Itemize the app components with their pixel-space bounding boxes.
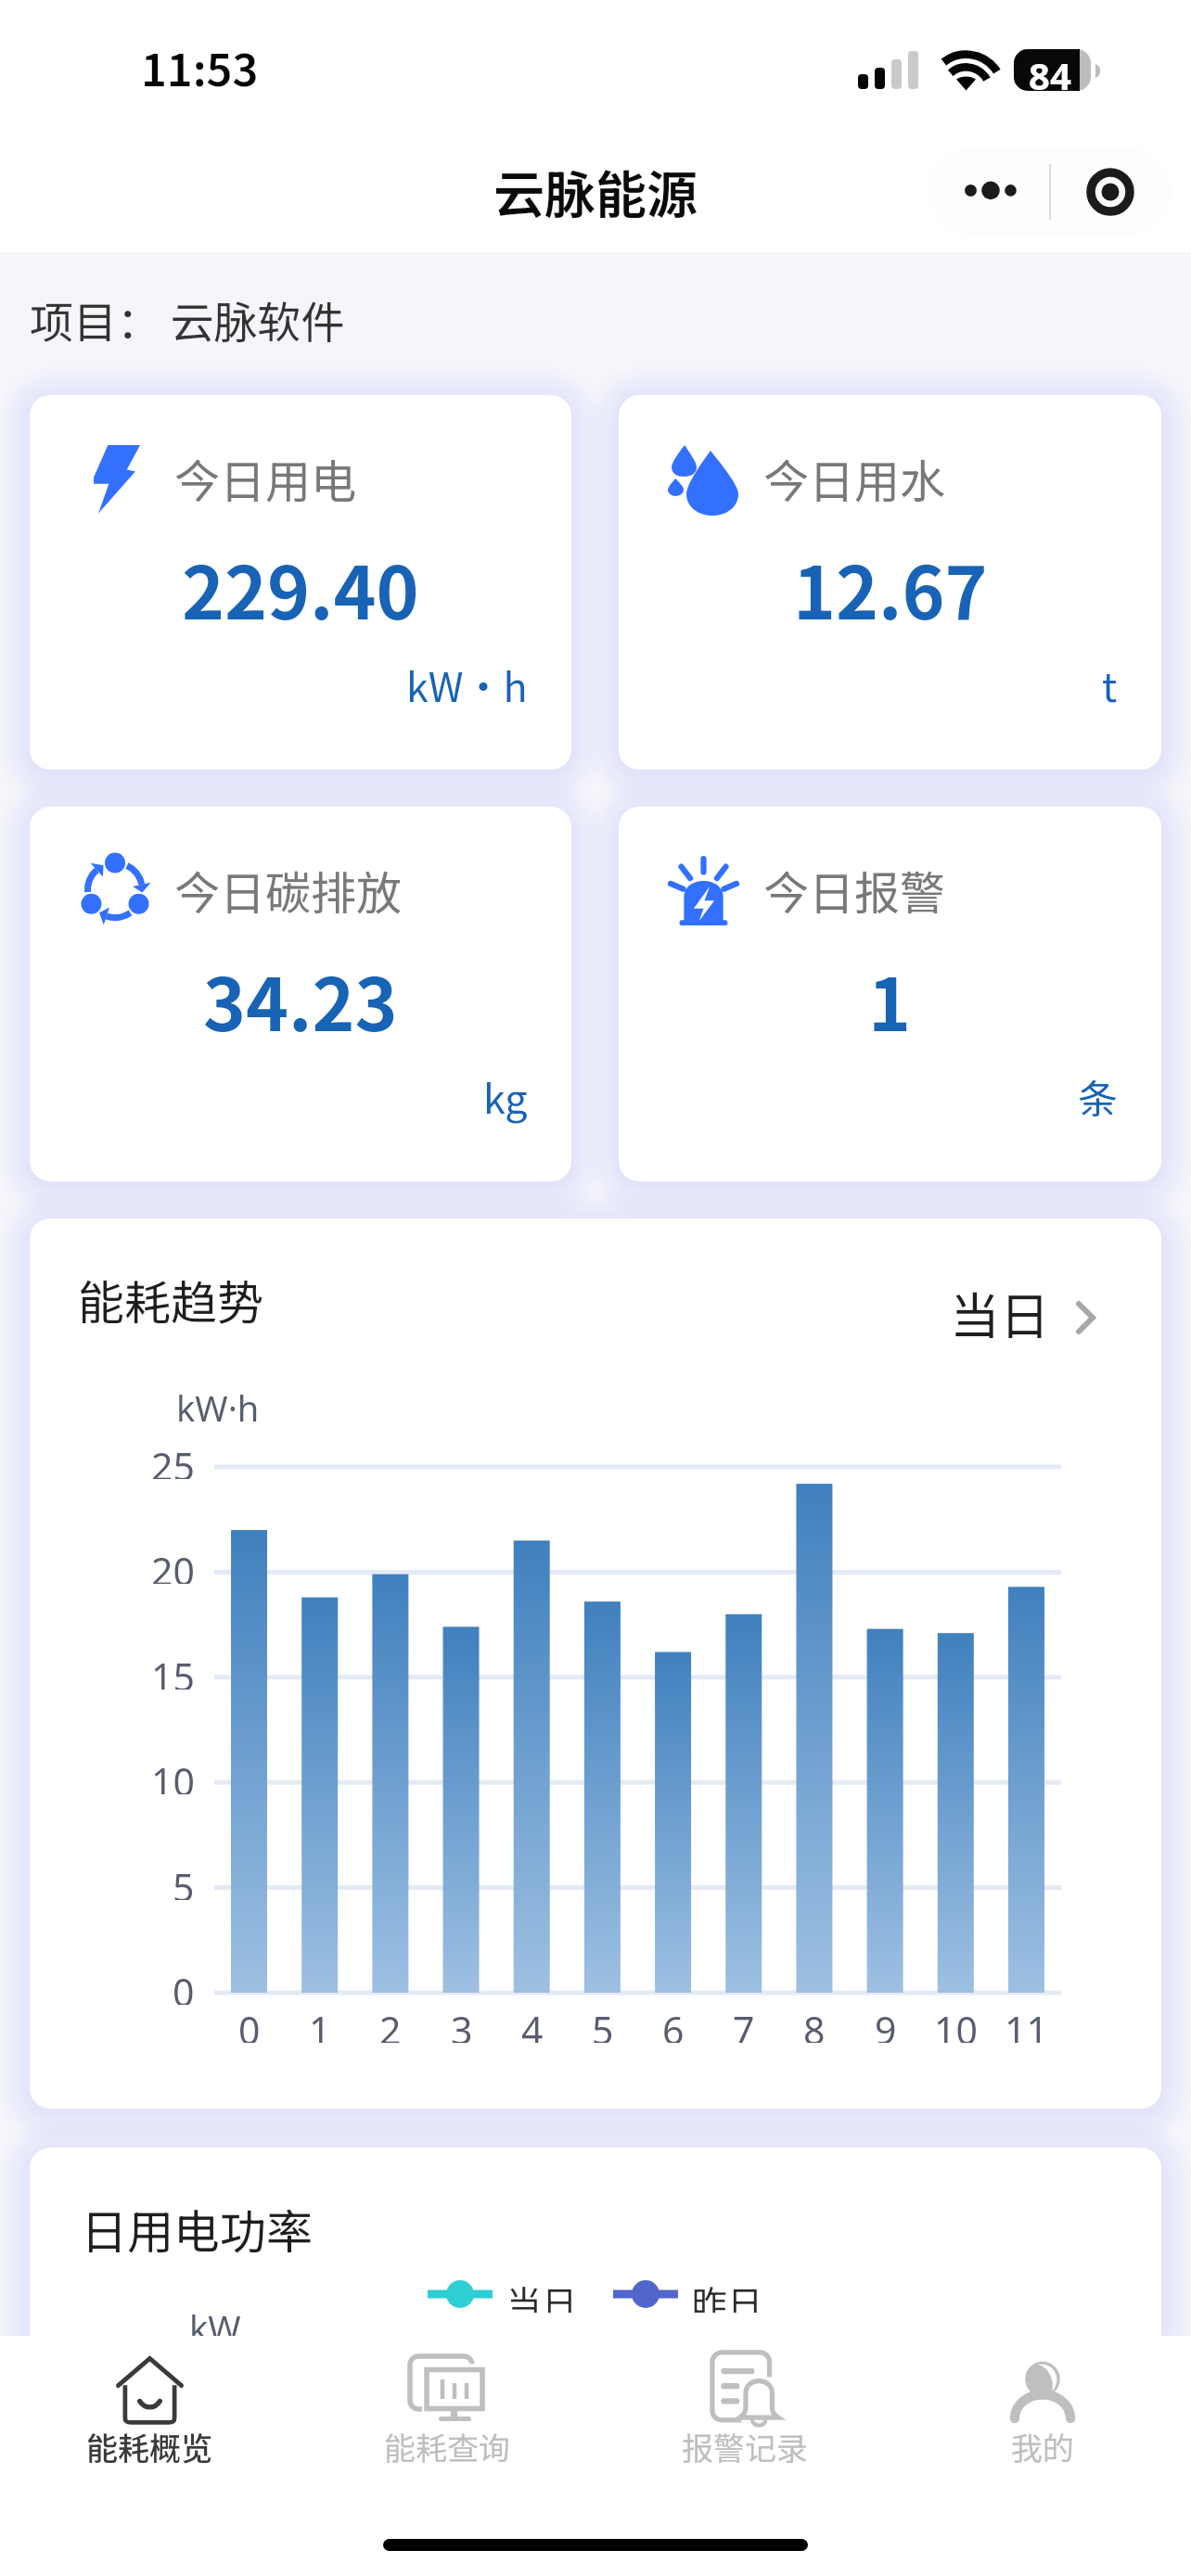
staticText: 能耗概览 <box>86 2424 212 2467</box>
button[interactable]: 今日碳排放 <box>30 807 571 1181</box>
staticText: kW·h <box>406 656 528 713</box>
staticText: 25 <box>151 1440 195 1479</box>
staticText: 84 <box>1029 50 1071 100</box>
staticText: 229.40 <box>182 536 419 641</box>
staticText: 0 <box>238 2004 261 2043</box>
staticText: 条 <box>1078 1067 1118 1125</box>
staticText: 5 <box>592 2004 614 2043</box>
staticText: 今日碳排放 <box>174 857 403 923</box>
staticText: 11 <box>1005 2004 1048 2043</box>
staticText: 能耗查询 <box>384 2424 510 2467</box>
staticText: kg <box>483 1067 528 1125</box>
staticText: 5 <box>173 1861 195 1900</box>
staticText: 15 <box>151 1651 195 1690</box>
staticText: 20 <box>151 1545 195 1584</box>
staticText: 12.67 <box>793 536 988 641</box>
staticText: 2 <box>379 2004 402 2043</box>
staticText: 7 <box>733 2004 755 2043</box>
button[interactable]: 能耗查询 <box>298 2336 595 2484</box>
staticText: 当日 <box>506 2276 578 2313</box>
staticText: 我的 <box>1011 2424 1074 2467</box>
staticText: 1 <box>309 2004 331 2043</box>
staticText: 3 <box>451 2004 473 2043</box>
staticText: 9 <box>875 2004 897 2043</box>
staticText: 1 <box>868 948 912 1052</box>
staticText: 34.23 <box>203 948 398 1052</box>
staticText: kW <box>189 2303 241 2352</box>
staticText: 今日报警 <box>763 857 946 923</box>
staticText: 今日用水 <box>763 445 946 511</box>
staticText: 能耗趋势 <box>78 1266 263 1333</box>
button[interactable]: 今日报警 <box>619 807 1161 1181</box>
staticText: 10 <box>151 1755 195 1794</box>
staticText: 6 <box>662 2004 685 2043</box>
staticText: 8 <box>803 2004 826 2043</box>
button[interactable]: 今日用水 <box>619 395 1161 770</box>
staticText: 10 <box>934 2004 978 2043</box>
staticText: 项目： 云脉软件 <box>30 287 345 351</box>
button[interactable]: 今日用电 <box>30 395 571 770</box>
button[interactable]: 当日 <box>934 1263 1110 1345</box>
button[interactable]: Close mini program <box>1050 147 1172 236</box>
staticText: 当日 <box>950 1276 1050 1348</box>
button[interactable]: 我的 <box>893 2336 1191 2484</box>
button[interactable]: More options <box>928 147 1050 236</box>
staticText: 11:53 <box>141 34 259 99</box>
staticText: 云脉能源 <box>493 154 698 228</box>
button[interactable]: 能耗概览 <box>0 2336 298 2484</box>
staticText: kW·h <box>176 1384 260 1432</box>
staticText: 日用电功率 <box>81 2195 313 2262</box>
staticText: 4 <box>521 2004 544 2043</box>
staticText: t <box>1102 656 1118 713</box>
staticText: 昨日 <box>692 2276 763 2313</box>
staticText: 报警记录 <box>682 2424 808 2467</box>
staticText: 今日用电 <box>174 445 357 511</box>
button[interactable]: 报警记录 <box>595 2336 893 2484</box>
staticText: 0 <box>173 1966 195 2005</box>
